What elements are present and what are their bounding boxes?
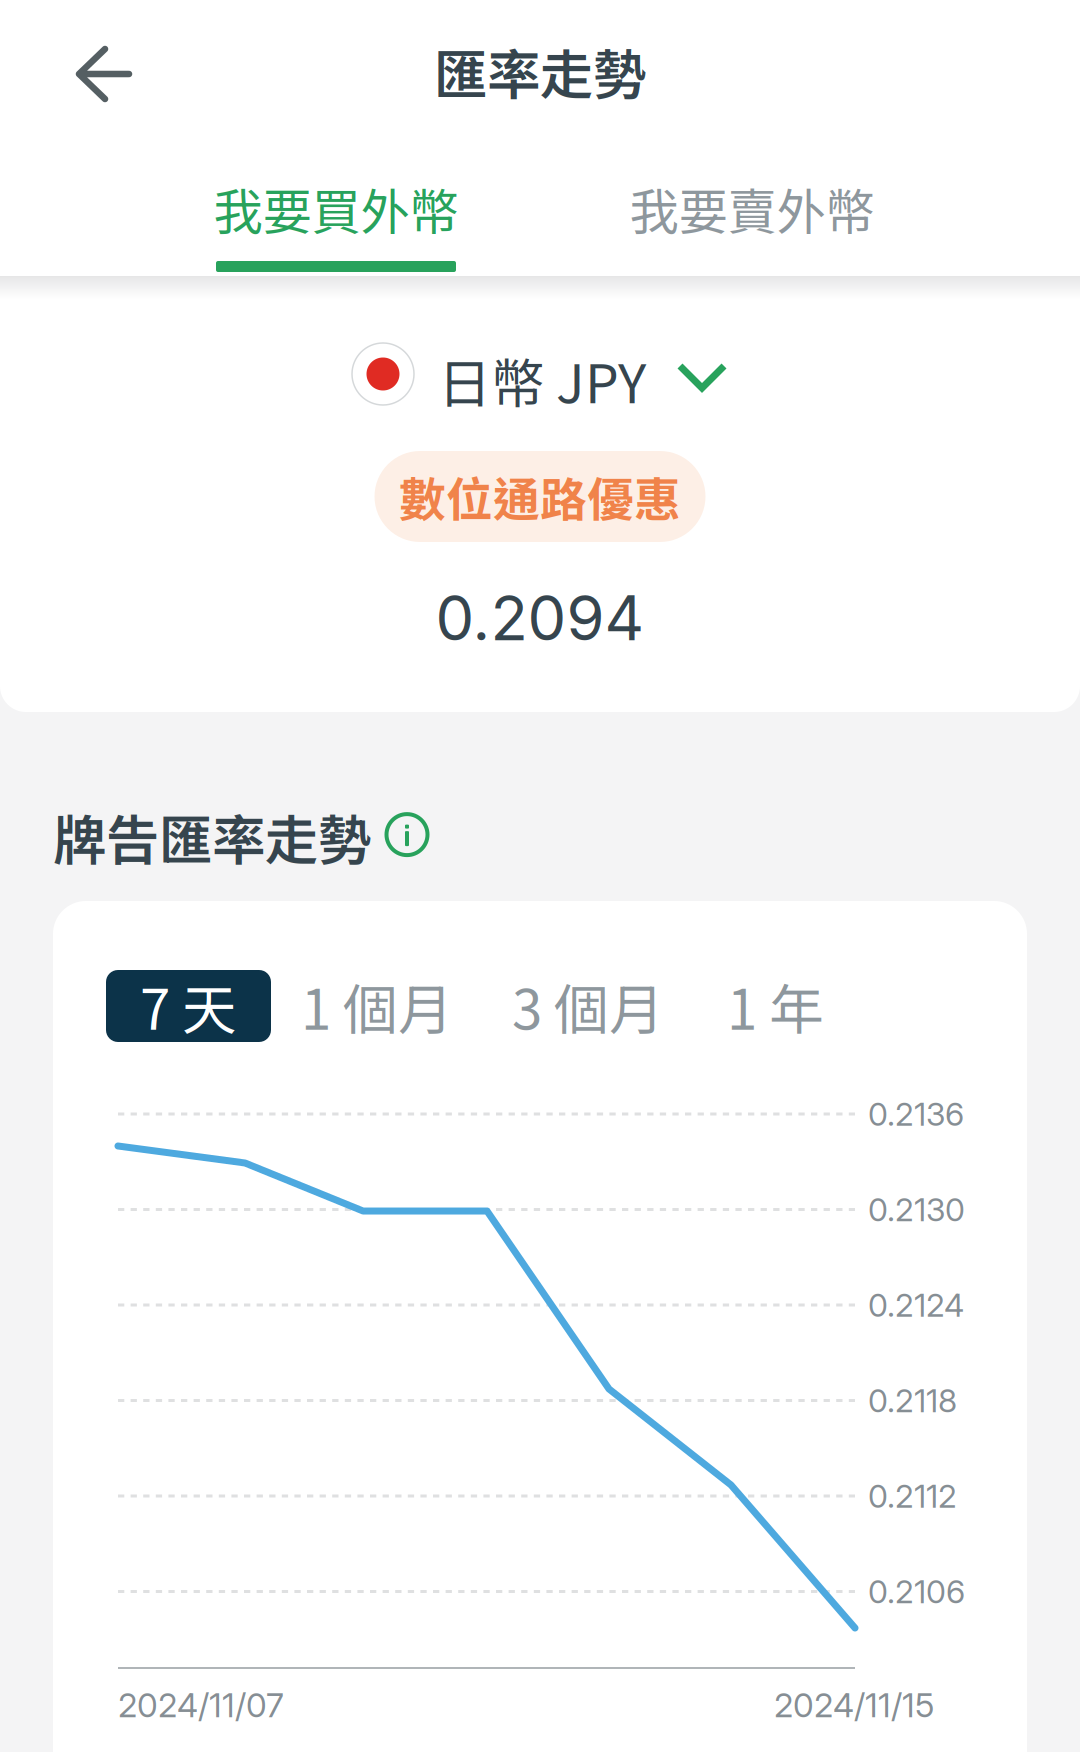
staticText: 0.2124 [868,1286,964,1324]
staticText: 數位通路優惠 [399,463,681,530]
staticText: 日幣 JPY [438,341,646,419]
button[interactable]: 日幣 JPY [352,337,728,411]
staticText: 匯率走勢 [434,32,646,110]
button[interactable]: 我要買外幣 [128,172,544,278]
button[interactable]: 1 個月 [301,970,471,1042]
staticText: 7 天 [140,966,237,1046]
staticText: 2024/11/15 [774,1685,934,1725]
staticText: 2024/11/07 [118,1685,284,1725]
staticText: 0.2106 [868,1572,965,1611]
staticText: 0.2112 [868,1477,957,1515]
button[interactable]: 1 年 [727,970,857,1042]
staticText: 1 個月 [301,966,453,1046]
button[interactable]: 3 個月 [512,970,682,1042]
button[interactable]: 我要賣外幣 [544,172,960,278]
staticText: 我要賣外幣 [629,173,874,244]
staticText: 0.2118 [868,1381,957,1420]
staticText: 我要買外幣 [213,173,458,244]
staticText: 0.2130 [868,1190,965,1229]
staticText: 1 年 [727,966,824,1046]
button[interactable]: 7 天 [106,970,271,1042]
staticText: 3 個月 [512,966,664,1046]
staticText: 0.2094 [435,581,644,655]
staticText: 牌告匯率走勢 [53,798,371,875]
button[interactable]: Back [44,14,164,134]
staticText: 0.2136 [868,1095,964,1133]
